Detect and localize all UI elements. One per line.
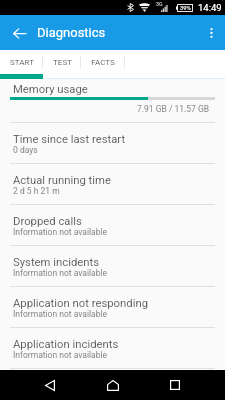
staticText: Diagnostics	[37, 25, 106, 40]
staticText: START	[10, 58, 34, 67]
button[interactable]: Back	[38, 370, 62, 400]
button[interactable]: Navigate up	[6, 20, 32, 46]
staticText: 39%	[180, 5, 191, 12]
button[interactable]: System incidents	[0, 246, 225, 287]
staticText: 3G	[156, 1, 163, 7]
button[interactable]: Application incidents	[0, 328, 225, 369]
button[interactable]: FACTS	[81, 50, 125, 79]
staticText: 7.91 GB / 11.57 GB	[137, 104, 210, 114]
staticText: FACTS	[91, 58, 115, 67]
staticText: 2 d 5 h 21 m	[13, 186, 60, 196]
staticText: Time since last restart	[13, 133, 126, 146]
staticText: 0 days	[13, 145, 38, 155]
staticText: Actual running time	[13, 174, 111, 187]
staticText: Information not available	[13, 350, 108, 360]
staticText: 14:49	[198, 2, 222, 13]
button[interactable]: Time since last restart	[0, 123, 225, 164]
staticText: Application incidents	[13, 338, 119, 351]
staticText: Information not available	[13, 268, 108, 278]
button[interactable]: Actual running time	[0, 164, 225, 205]
button[interactable]: Home	[101, 370, 125, 400]
staticText: TEST	[53, 58, 72, 67]
button[interactable]: TEST	[43, 50, 81, 79]
staticText: Application not responding	[13, 297, 148, 310]
button[interactable]: Application not responding	[0, 287, 225, 328]
button[interactable]: Memory usage	[0, 79, 225, 123]
button[interactable]: More options	[199, 21, 223, 45]
staticText: Dropped calls	[13, 215, 82, 228]
staticText: Information not available	[13, 227, 108, 237]
button[interactable]: Recent apps	[163, 370, 187, 400]
button[interactable]: Dropped calls	[0, 205, 225, 246]
staticText: Information not available	[13, 309, 108, 319]
staticText: System incidents	[13, 256, 100, 269]
staticText: Memory usage	[13, 83, 88, 96]
button[interactable]: START	[0, 50, 43, 79]
